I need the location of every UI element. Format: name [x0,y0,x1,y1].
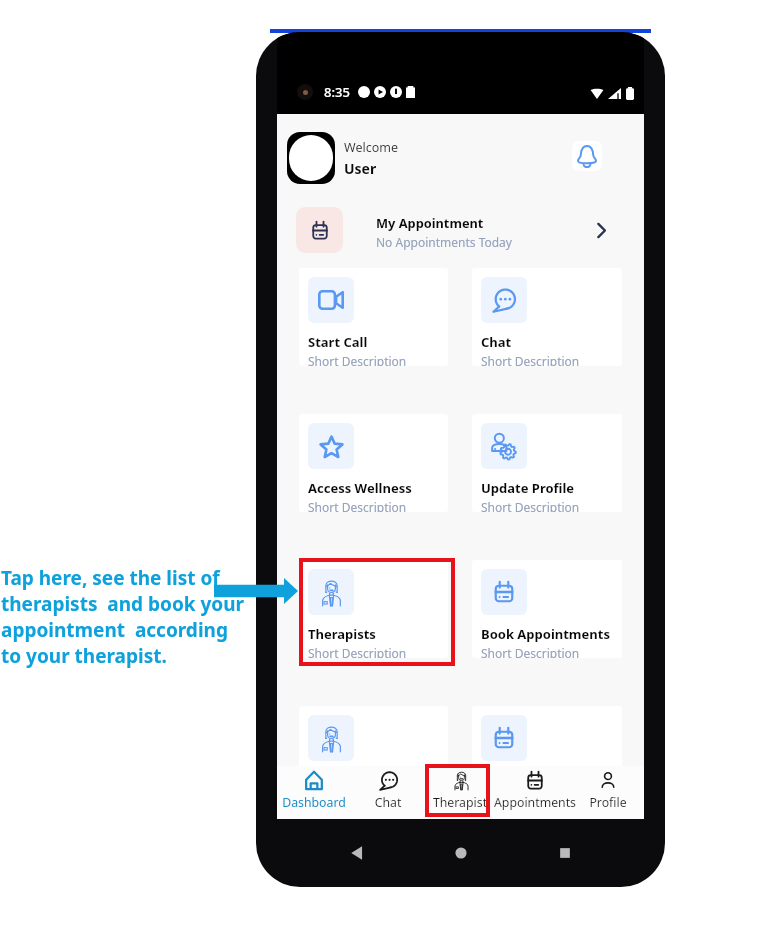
staticText: My Appointment [376,214,484,231]
staticText: Tap here, see the list of [1,565,220,591]
staticText: Short Description [481,353,580,366]
staticText: appointment according [1,617,228,643]
staticText: Access Wellness [308,479,412,497]
button[interactable]: Profile [571,766,644,819]
button[interactable]: Notifications [572,141,602,171]
button[interactable]: Chat [351,766,425,819]
button[interactable]: Update Profile [472,414,622,512]
staticText: Short Description [481,791,580,804]
button[interactable]: Book Appointments [472,560,622,658]
staticText: therapists and book your [1,591,245,617]
staticText: Start Call [308,333,368,351]
button[interactable]: Therapists [299,706,448,804]
button[interactable]: Therapists [299,560,448,658]
staticText: Short Description [308,353,407,366]
button[interactable]: Book Appointments [472,706,622,804]
staticText: Therapist [405,794,515,811]
button[interactable]: Dashboard [277,766,351,819]
button[interactable]: Chat [472,268,622,366]
button[interactable]: My Appointment [296,200,606,260]
staticText: Therapists [308,771,376,789]
button[interactable]: Access Wellness [299,414,448,512]
staticText: Book Appointments [481,771,610,789]
staticText: Short Description [481,499,580,512]
staticText: Dashboard [259,794,369,811]
staticText: Profile [553,794,663,811]
staticText: Short Description [308,499,407,512]
staticText: Short Description [308,791,407,804]
staticText: No Appointments Today [376,234,512,250]
button[interactable]: Start Call [299,268,448,366]
staticText: User [344,159,377,178]
button[interactable]: Therapist [425,766,498,819]
staticText: Short Description [308,645,407,658]
staticText: Chat [481,333,512,351]
staticText: 8:35 [324,83,350,101]
staticText: Appointments [480,794,590,811]
staticText: to your therapist. [1,643,167,669]
staticText: Therapists [308,625,376,643]
button[interactable]: Appointments [498,766,571,819]
staticText: Welcome [344,139,398,156]
staticText: Update Profile [481,479,575,497]
staticText: Short Description [481,645,580,658]
staticText: Chat [333,794,443,811]
staticText: Book Appointments [481,625,610,643]
